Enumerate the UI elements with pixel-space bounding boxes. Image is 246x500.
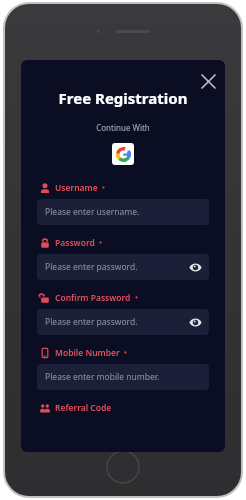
staticText: Free Registration [21,88,225,108]
staticText: Mobile Number [55,347,120,359]
other: Continue with Google [116,147,131,162]
staticText: Password [55,237,95,249]
staticText: Please enter password. [45,261,138,273]
staticText: Continue With [21,122,225,133]
staticText: Please enter mobile number. [45,371,160,383]
button[interactable]: Continue with Google [112,143,134,165]
button[interactable]: Please enter password. [37,309,209,335]
button[interactable]: Show password [187,314,203,330]
button[interactable]: Please enter mobile number. [37,364,209,390]
button[interactable]: Please enter password. [37,254,209,280]
staticText: Please enter password. [45,316,138,328]
button[interactable]: Please enter username. [37,199,209,225]
staticText: Username [55,182,98,194]
button[interactable]: Show password [187,259,203,275]
staticText: Referral Code [55,402,112,414]
button[interactable]: Close [197,70,219,92]
staticText: Please enter username. [45,206,140,218]
staticText: Confirm Password [55,292,131,304]
